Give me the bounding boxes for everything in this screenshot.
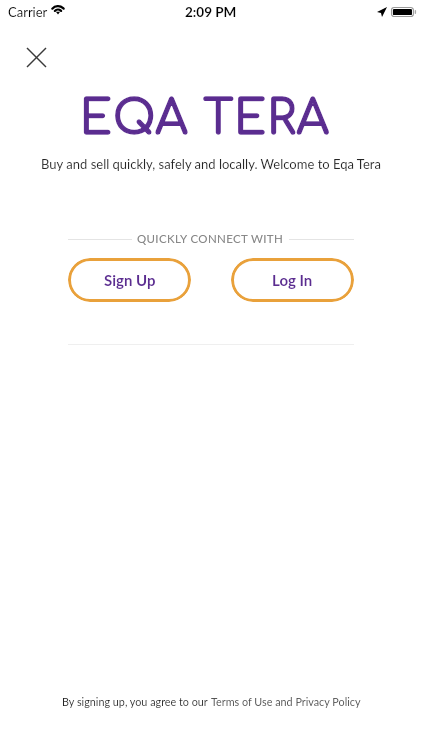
button[interactable]: Sign Up — [68, 258, 191, 302]
staticText: Log In — [272, 271, 313, 289]
staticText: EQA TERA — [0, 93, 416, 144]
staticText: Buy and sell quickly, safely and locally… — [0, 156, 422, 172]
staticText: Carrier — [8, 4, 48, 20]
staticText: 2:09 PM — [185, 4, 237, 20]
button[interactable]: Close — [13, 34, 59, 80]
staticText: EQA TERA — [0, 93, 416, 144]
staticText: Sign Up — [104, 271, 156, 289]
button[interactable]: Terms of Use and Privacy Policy — [211, 695, 361, 708]
button[interactable]: Log In — [231, 258, 354, 302]
staticText: By signing up, you agree to our — [62, 695, 211, 708]
staticText: QUICKLY CONNECT WITH — [137, 232, 284, 246]
